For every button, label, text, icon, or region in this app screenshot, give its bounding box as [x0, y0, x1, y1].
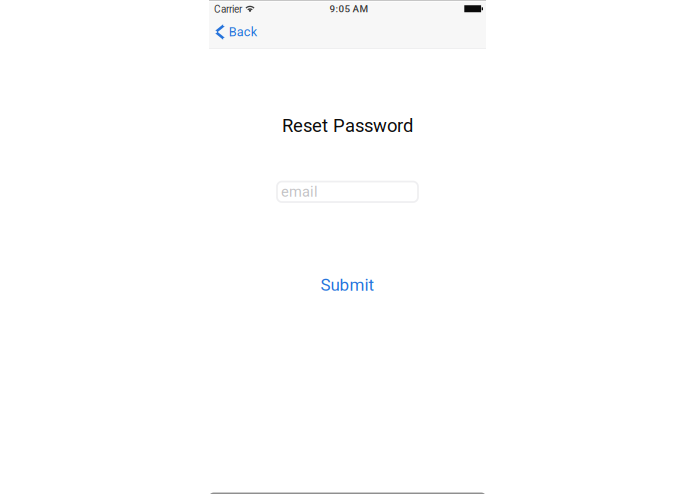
staticText: Carrier: [214, 3, 242, 15]
staticText: Submit: [320, 275, 374, 295]
button[interactable]: Back: [209, 16, 281, 48]
staticText: email: [281, 183, 318, 200]
staticText: Reset Password: [282, 115, 413, 137]
staticText: 9:05 AM: [329, 3, 368, 15]
button[interactable]: email: [277, 182, 418, 202]
staticText: Back: [229, 25, 257, 39]
button[interactable]: Submit: [304, 273, 390, 297]
